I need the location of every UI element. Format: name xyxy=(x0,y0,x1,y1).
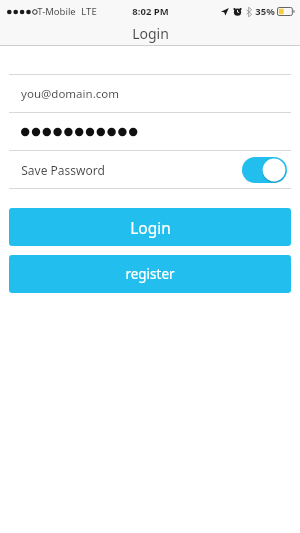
staticText: 35% xyxy=(255,5,275,18)
staticText: you@domain.com xyxy=(21,86,119,102)
button[interactable]: Save Password xyxy=(9,151,291,188)
button[interactable]: Login xyxy=(9,208,291,246)
button[interactable]: Save Password toggle, on xyxy=(242,157,287,183)
button[interactable]: register xyxy=(9,255,291,293)
staticText: Login xyxy=(132,24,169,43)
staticText: T-Mobile xyxy=(37,5,76,18)
staticText: 8:02 PM xyxy=(132,5,169,18)
staticText: Login xyxy=(130,217,171,238)
staticText: LTE xyxy=(81,5,97,18)
button[interactable]: Password xyxy=(9,113,291,150)
button[interactable]: you@domain.com xyxy=(9,75,291,112)
staticText: register xyxy=(125,265,175,283)
staticText: Save Password xyxy=(21,162,105,178)
